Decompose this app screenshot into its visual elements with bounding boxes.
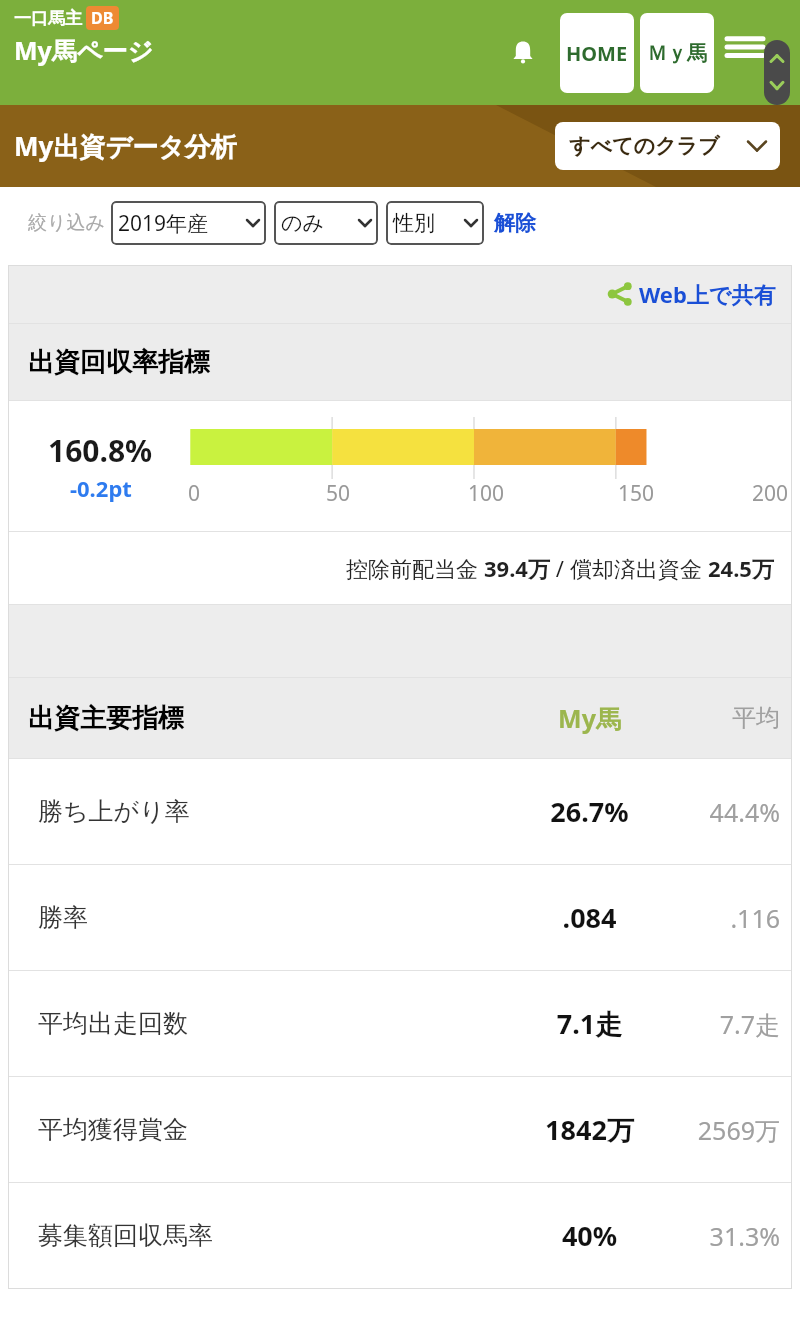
staticText: DB	[91, 7, 114, 29]
staticText: .084	[507, 899, 672, 936]
button[interactable]: 2019年産	[111, 201, 266, 245]
staticText: Web上で共有	[639, 279, 776, 309]
staticText: 100	[466, 479, 506, 508]
staticText: 160.8%	[48, 430, 153, 471]
staticText: My馬	[507, 701, 672, 735]
staticText: 平均	[672, 703, 780, 733]
staticText: 200	[750, 479, 790, 508]
staticText: /	[550, 553, 570, 583]
button[interactable]: すべてのクラブ	[555, 122, 780, 170]
staticText: 償却済出資金	[570, 553, 708, 583]
button[interactable]: Menu	[722, 17, 768, 89]
staticText: 出資主要指標	[28, 702, 507, 735]
button[interactable]: Notifications	[500, 30, 546, 76]
staticText: 7.1走	[507, 1005, 672, 1042]
button[interactable]: 解除	[494, 210, 536, 236]
staticText: 2569万	[672, 1113, 780, 1147]
staticText: 募集額回収馬率	[38, 1220, 507, 1251]
button[interactable]: HOME	[560, 13, 634, 93]
staticText: 7.7走	[672, 1007, 780, 1041]
staticText: .116	[672, 901, 780, 935]
staticText: 31.3%	[672, 1219, 780, 1253]
staticText: -0.2pt	[70, 473, 132, 503]
staticText: 26.7%	[507, 793, 672, 830]
staticText: 勝率	[38, 902, 507, 933]
staticText: 0	[174, 479, 214, 508]
staticText: 控除前配当金	[346, 553, 484, 583]
staticText: 50	[318, 479, 358, 508]
staticText: Ｍｙ馬	[647, 41, 707, 66]
button[interactable]: 勝ち上がり率	[8, 759, 792, 864]
staticText: 平均獲得賞金	[38, 1114, 507, 1145]
button[interactable]: 勝率	[8, 865, 792, 970]
staticText: 勝ち上がり率	[38, 796, 507, 827]
staticText: 1842万	[507, 1111, 672, 1148]
staticText: 24.5万	[708, 553, 774, 583]
staticText: My馬ページ	[14, 33, 154, 67]
staticText: 平均出走回数	[38, 1008, 507, 1039]
button[interactable]: 募集額回収馬率	[8, 1183, 792, 1288]
button[interactable]: のみ	[274, 201, 378, 245]
staticText: 2019年産	[118, 209, 209, 238]
staticText: 性別	[393, 210, 435, 236]
staticText: 39.4万	[484, 553, 550, 583]
staticText: 40%	[507, 1217, 672, 1254]
button[interactable]: Web上で共有	[607, 279, 776, 309]
staticText: 出資回収率指標	[28, 346, 210, 379]
staticText: HOME	[566, 40, 628, 67]
staticText: 44.4%	[672, 795, 780, 829]
staticText: のみ	[281, 210, 324, 236]
staticText: すべてのクラブ	[569, 133, 720, 159]
staticText: 絞り込み	[28, 211, 105, 235]
button[interactable]: 平均獲得賞金	[8, 1077, 792, 1182]
button[interactable]: 性別	[386, 201, 484, 245]
staticText: My出資データ分析	[14, 128, 237, 164]
button[interactable]: Scroll	[764, 40, 790, 105]
button[interactable]: Ｍｙ馬	[640, 13, 714, 93]
button[interactable]: 平均出走回数	[8, 971, 792, 1076]
staticText: 一口馬主	[14, 8, 82, 29]
staticText: 150	[616, 479, 656, 508]
